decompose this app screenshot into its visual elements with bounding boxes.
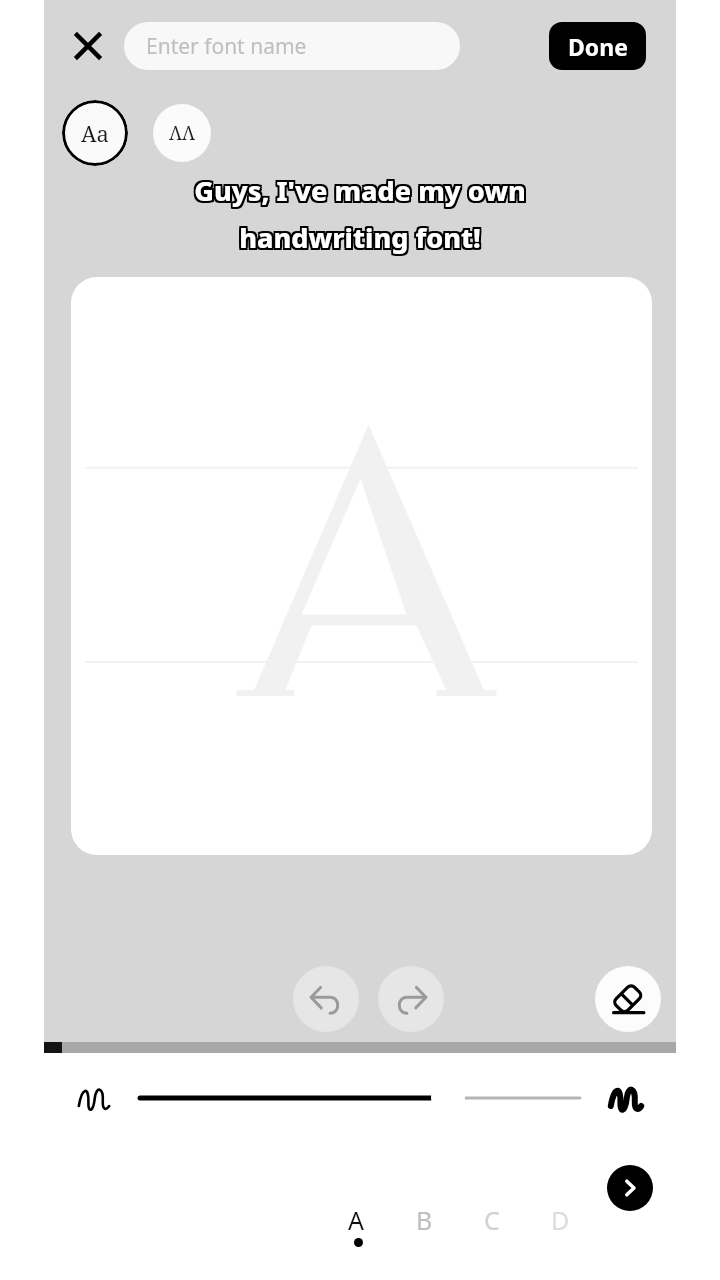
staticText: Enter font name bbox=[146, 32, 307, 61]
staticText: D bbox=[551, 1203, 570, 1237]
button[interactable]: B bbox=[400, 1196, 448, 1244]
staticText: handwriting font! bbox=[237, 221, 479, 258]
button[interactable]: Stroke width bbox=[140, 1070, 580, 1126]
staticText: handwriting font! bbox=[239, 221, 481, 258]
staticText: Guys, I've made my own bbox=[196, 170, 528, 207]
button[interactable]: C bbox=[468, 1196, 516, 1244]
button[interactable]: Undo bbox=[293, 966, 359, 1032]
button[interactable]: D bbox=[536, 1196, 584, 1244]
staticText: Guys, I've made my own bbox=[192, 172, 524, 209]
staticText: handwriting font! bbox=[239, 219, 481, 256]
staticText: Guys, I've made my own bbox=[192, 174, 524, 211]
button[interactable]: Redo bbox=[378, 966, 444, 1032]
button[interactable]: ΛΛ bbox=[153, 104, 211, 162]
staticText: handwriting font! bbox=[239, 217, 481, 254]
staticText: handwriting font! bbox=[241, 221, 483, 258]
staticText: handwriting font! bbox=[237, 217, 479, 254]
staticText: Guys, I've made my own bbox=[194, 170, 526, 207]
staticText: ΛΛ bbox=[169, 120, 196, 146]
button[interactable]: Enter font name bbox=[124, 22, 460, 70]
staticText: handwriting font! bbox=[241, 217, 483, 254]
staticText: B bbox=[416, 1203, 433, 1237]
staticText: Guys, I've made my own bbox=[196, 174, 528, 211]
button[interactable]: Eraser bbox=[595, 966, 661, 1032]
button[interactable]: A bbox=[332, 1196, 380, 1244]
button[interactable]: Next bbox=[607, 1165, 653, 1211]
button[interactable]: Done bbox=[549, 22, 646, 70]
staticText: C bbox=[484, 1203, 500, 1237]
staticText: handwriting font! bbox=[237, 219, 479, 256]
staticText: Guys, I've made my own bbox=[192, 170, 524, 207]
staticText: Done bbox=[568, 31, 628, 62]
button[interactable]: Thin stroke bbox=[64, 1068, 124, 1128]
staticText: Guys, I've made my own bbox=[194, 174, 526, 211]
staticText: A bbox=[348, 1203, 364, 1237]
button[interactable]: Aa bbox=[62, 100, 128, 166]
button[interactable]: Close bbox=[62, 20, 114, 72]
button[interactable]: Thick stroke bbox=[596, 1068, 656, 1128]
button[interactable]: Drawing canvas bbox=[71, 277, 652, 855]
staticText: Guys, I've made my own bbox=[196, 172, 528, 209]
staticText: Guys, I've made my own bbox=[194, 172, 526, 209]
staticText: Aa bbox=[81, 118, 109, 148]
staticText: handwriting font! bbox=[241, 219, 483, 256]
